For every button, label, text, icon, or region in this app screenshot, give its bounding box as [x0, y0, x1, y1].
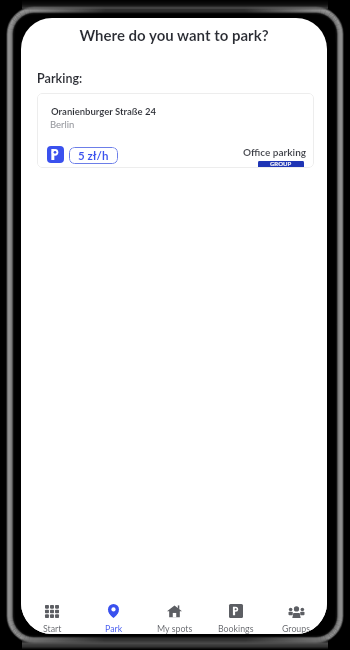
- staticText: Start: [43, 623, 62, 634]
- staticText: GROUP: [270, 161, 292, 167]
- staticText: Berlin: [50, 119, 75, 130]
- staticText: Park: [105, 623, 123, 634]
- button[interactable]: Start: [21, 588, 83, 634]
- button[interactable]: Groups: [266, 588, 327, 634]
- staticText: Groups: [282, 623, 311, 634]
- staticText: My spots: [157, 623, 193, 634]
- button[interactable]: Oranienburger Straße 24: [37, 93, 314, 168]
- staticText: Parking:: [37, 71, 83, 86]
- button[interactable]: Bookings: [205, 588, 266, 634]
- staticText: Bookings: [218, 623, 254, 634]
- staticText: Oranienburger Straße 24: [51, 106, 156, 117]
- staticText: Where do you want to park?: [21, 26, 327, 44]
- button[interactable]: My spots: [144, 588, 205, 634]
- staticText: 5 zł/h: [78, 149, 109, 163]
- button[interactable]: Park: [83, 588, 144, 634]
- staticText: Office parking: [243, 146, 307, 158]
